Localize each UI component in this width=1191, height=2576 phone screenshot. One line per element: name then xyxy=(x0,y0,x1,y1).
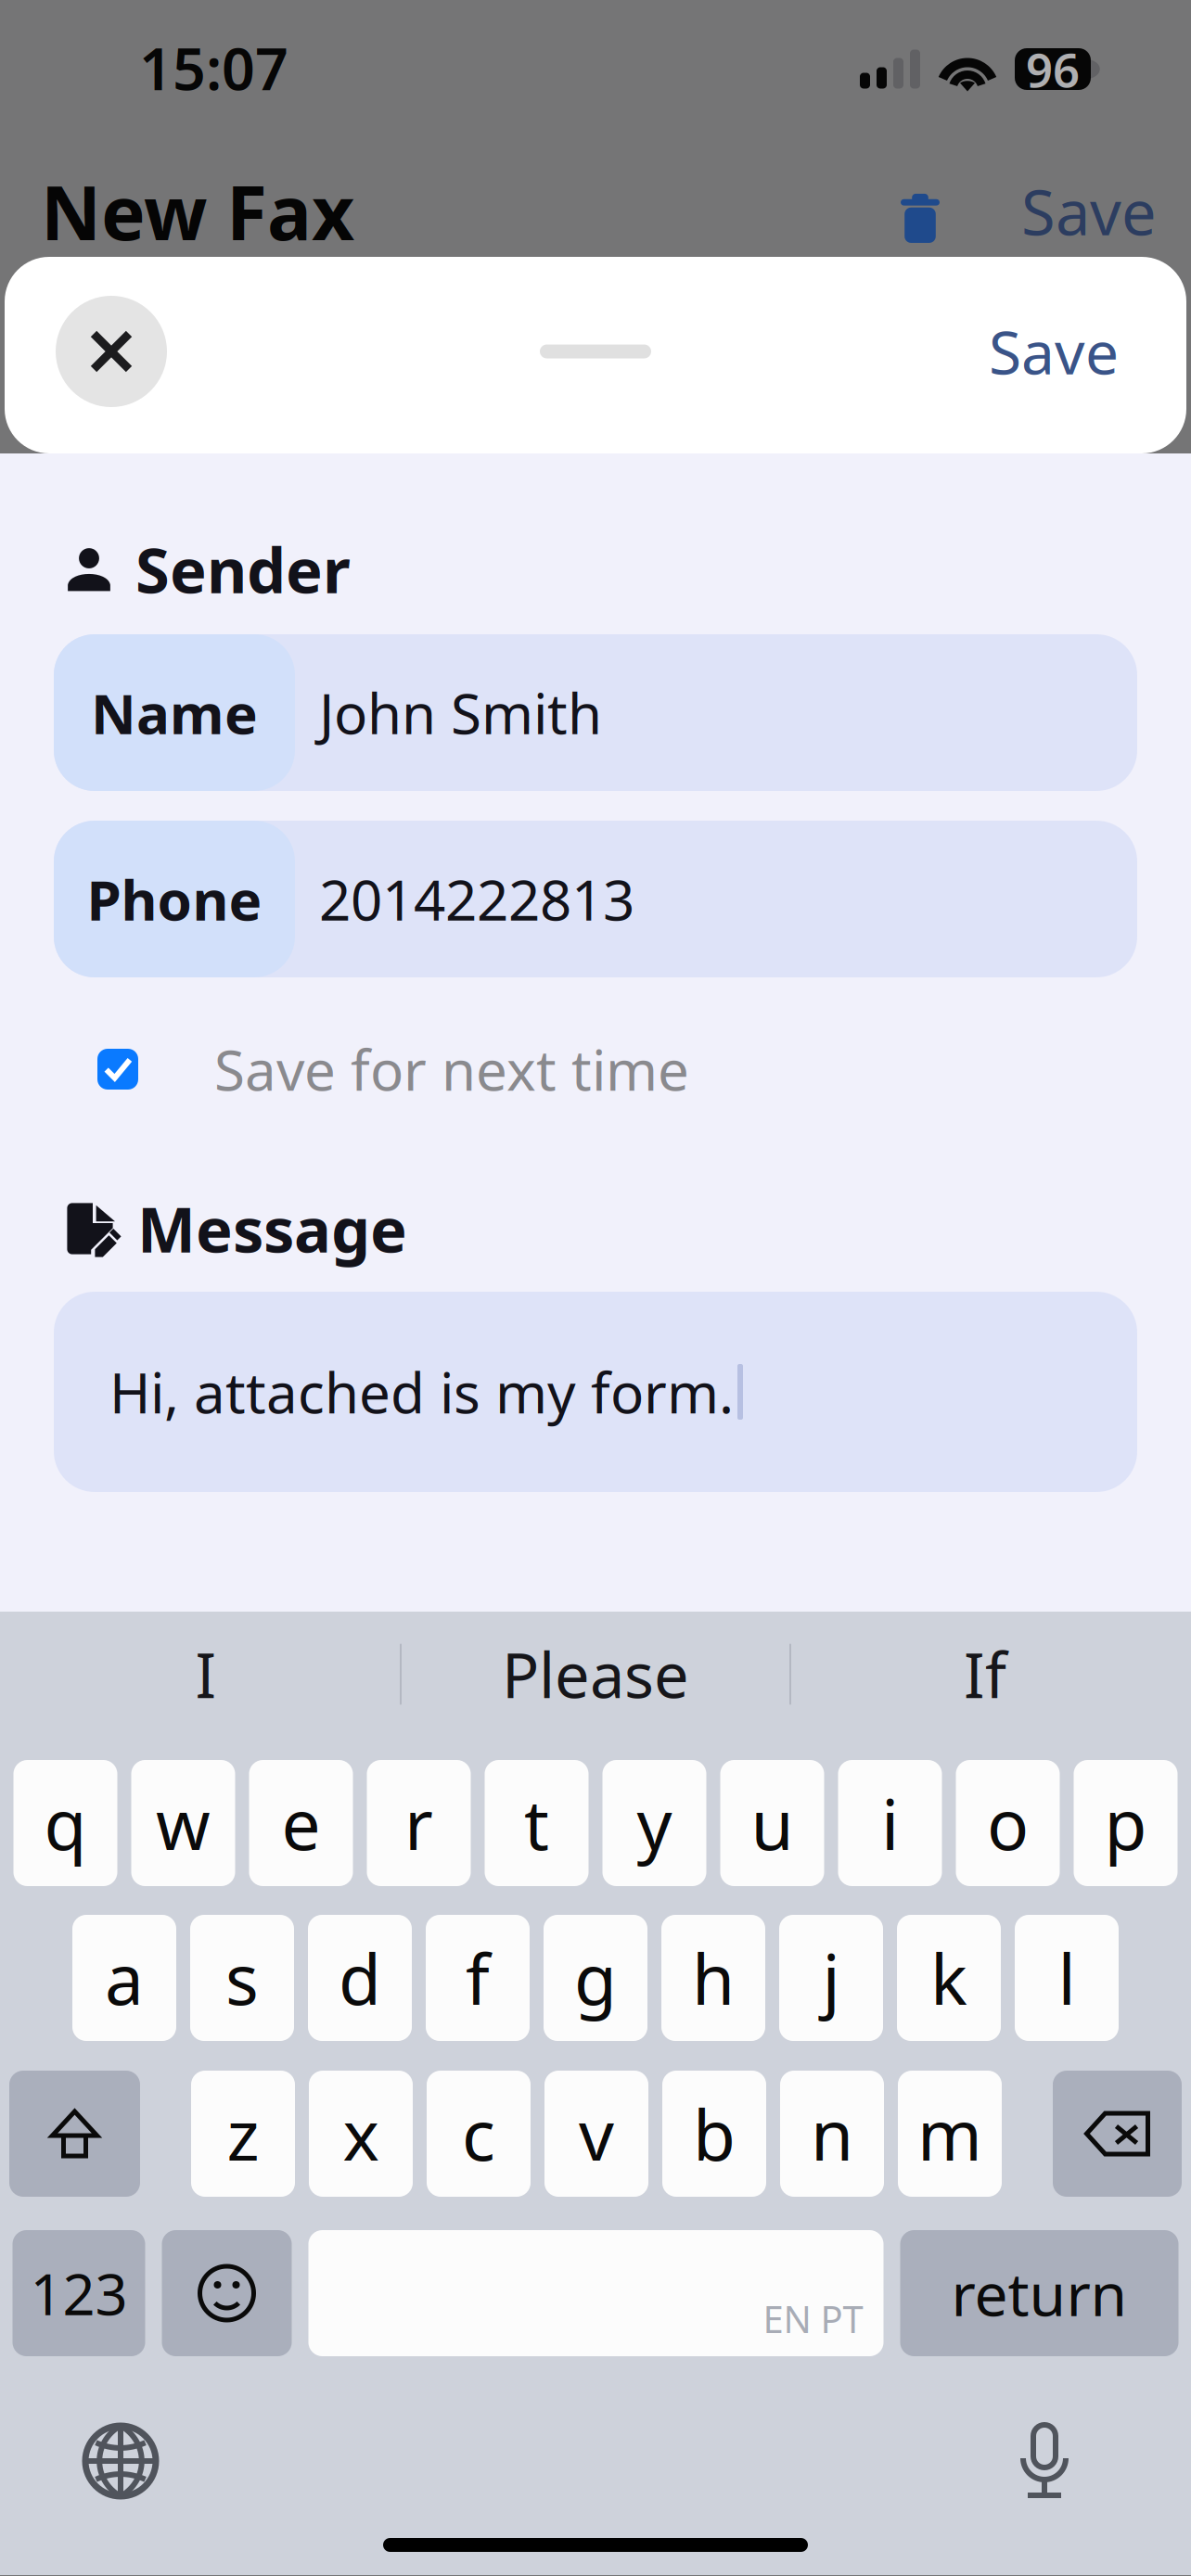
staticText: return xyxy=(951,2254,1127,2333)
staticText: 123 xyxy=(30,2255,128,2331)
button[interactable]: If xyxy=(791,1612,1179,1737)
staticText: v xyxy=(579,2088,614,2180)
button[interactable]: Close xyxy=(56,296,167,407)
button[interactable]: b xyxy=(662,2071,766,2197)
button[interactable]: i xyxy=(838,1760,942,1886)
button[interactable]: o xyxy=(956,1760,1060,1886)
button[interactable]: c xyxy=(427,2071,531,2197)
button[interactable]: Dictation xyxy=(1018,2421,1071,2501)
button[interactable]: n xyxy=(780,2071,884,2197)
staticText: d xyxy=(339,1932,381,2024)
staticText: o xyxy=(987,1777,1029,1869)
staticText: u xyxy=(751,1777,794,1869)
staticText: s xyxy=(225,1932,259,2024)
staticText: q xyxy=(44,1777,87,1869)
staticText: i xyxy=(881,1777,899,1869)
button[interactable]: e xyxy=(249,1760,353,1886)
button[interactable]: r xyxy=(367,1760,471,1886)
staticText: j xyxy=(822,1932,840,2024)
staticText: a xyxy=(105,1932,144,2024)
button[interactable]: Save xyxy=(1021,179,1157,244)
staticText: r xyxy=(404,1777,433,1869)
button[interactable]: s xyxy=(190,1915,294,2041)
button[interactable]: k xyxy=(897,1915,1001,2041)
staticText: New Fax xyxy=(41,162,354,261)
button[interactable]: Switch keyboard xyxy=(83,2422,159,2500)
staticText: m xyxy=(917,2088,982,2180)
button[interactable]: j xyxy=(779,1915,883,2041)
button[interactable]: I xyxy=(12,1612,400,1737)
button[interactable]: p xyxy=(1074,1760,1178,1886)
staticText: l xyxy=(1058,1932,1076,2024)
button[interactable]: Please xyxy=(402,1612,789,1737)
staticText: Hi, attached is my form. xyxy=(109,1355,734,1429)
staticText: Save xyxy=(989,312,1119,391)
staticText: 2014222813 xyxy=(319,862,634,936)
button[interactable]: Delete xyxy=(888,179,953,244)
staticText: Message xyxy=(137,1188,407,1270)
button[interactable]: 123 xyxy=(13,2230,145,2356)
button[interactable]: x xyxy=(309,2071,413,2197)
staticText: f xyxy=(466,1932,490,2024)
button[interactable]: Save for next time xyxy=(97,1049,1137,1090)
button[interactable]: d xyxy=(308,1915,412,2041)
staticText: h xyxy=(692,1932,735,2024)
button[interactable]: Delete xyxy=(1053,2071,1182,2197)
staticText: t xyxy=(524,1777,549,1869)
staticText: If xyxy=(964,1633,1006,1715)
button[interactable]: q xyxy=(13,1760,117,1886)
staticText: x xyxy=(343,2088,379,2180)
button[interactable]: Save xyxy=(989,296,1119,407)
staticText: Phone xyxy=(87,862,262,936)
staticText: g xyxy=(574,1932,617,2024)
button[interactable]: Shift xyxy=(9,2071,140,2197)
staticText: Save for next time xyxy=(214,1032,689,1106)
button[interactable]: w xyxy=(131,1760,235,1886)
button[interactable]: t xyxy=(485,1760,589,1886)
staticText: Please xyxy=(502,1633,689,1715)
staticText: EN PT xyxy=(763,2294,863,2343)
button[interactable]: f xyxy=(426,1915,530,2041)
button[interactable]: l xyxy=(1015,1915,1119,2041)
button[interactable]: return xyxy=(900,2230,1178,2356)
button[interactable]: z xyxy=(191,2071,295,2197)
staticText: I xyxy=(195,1633,217,1715)
staticText: 15:07 xyxy=(139,29,288,106)
button[interactable]: h xyxy=(661,1915,765,2041)
staticText: c xyxy=(462,2088,495,2180)
staticText: k xyxy=(930,1932,967,2024)
staticText: John Smith xyxy=(319,676,602,750)
staticText: Name xyxy=(91,676,258,750)
staticText: y xyxy=(637,1777,672,1869)
staticText: Sender xyxy=(135,528,351,610)
staticText: 96 xyxy=(1026,38,1080,100)
button[interactable]: Emoji xyxy=(162,2230,292,2356)
button[interactable]: u xyxy=(720,1760,824,1886)
staticText: b xyxy=(693,2088,736,2180)
button[interactable]: g xyxy=(544,1915,647,2041)
staticText: e xyxy=(282,1777,320,1869)
button[interactable]: y xyxy=(602,1760,706,1886)
staticText: w xyxy=(156,1777,211,1869)
staticText: p xyxy=(1104,1777,1147,1869)
staticText: z xyxy=(227,2088,259,2180)
button[interactable]: a xyxy=(72,1915,176,2041)
button[interactable]: v xyxy=(544,2071,648,2197)
staticText: Save xyxy=(1021,170,1157,252)
button[interactable]: Space xyxy=(308,2230,884,2356)
button[interactable]: m xyxy=(898,2071,1002,2197)
staticText: n xyxy=(811,2088,853,2180)
